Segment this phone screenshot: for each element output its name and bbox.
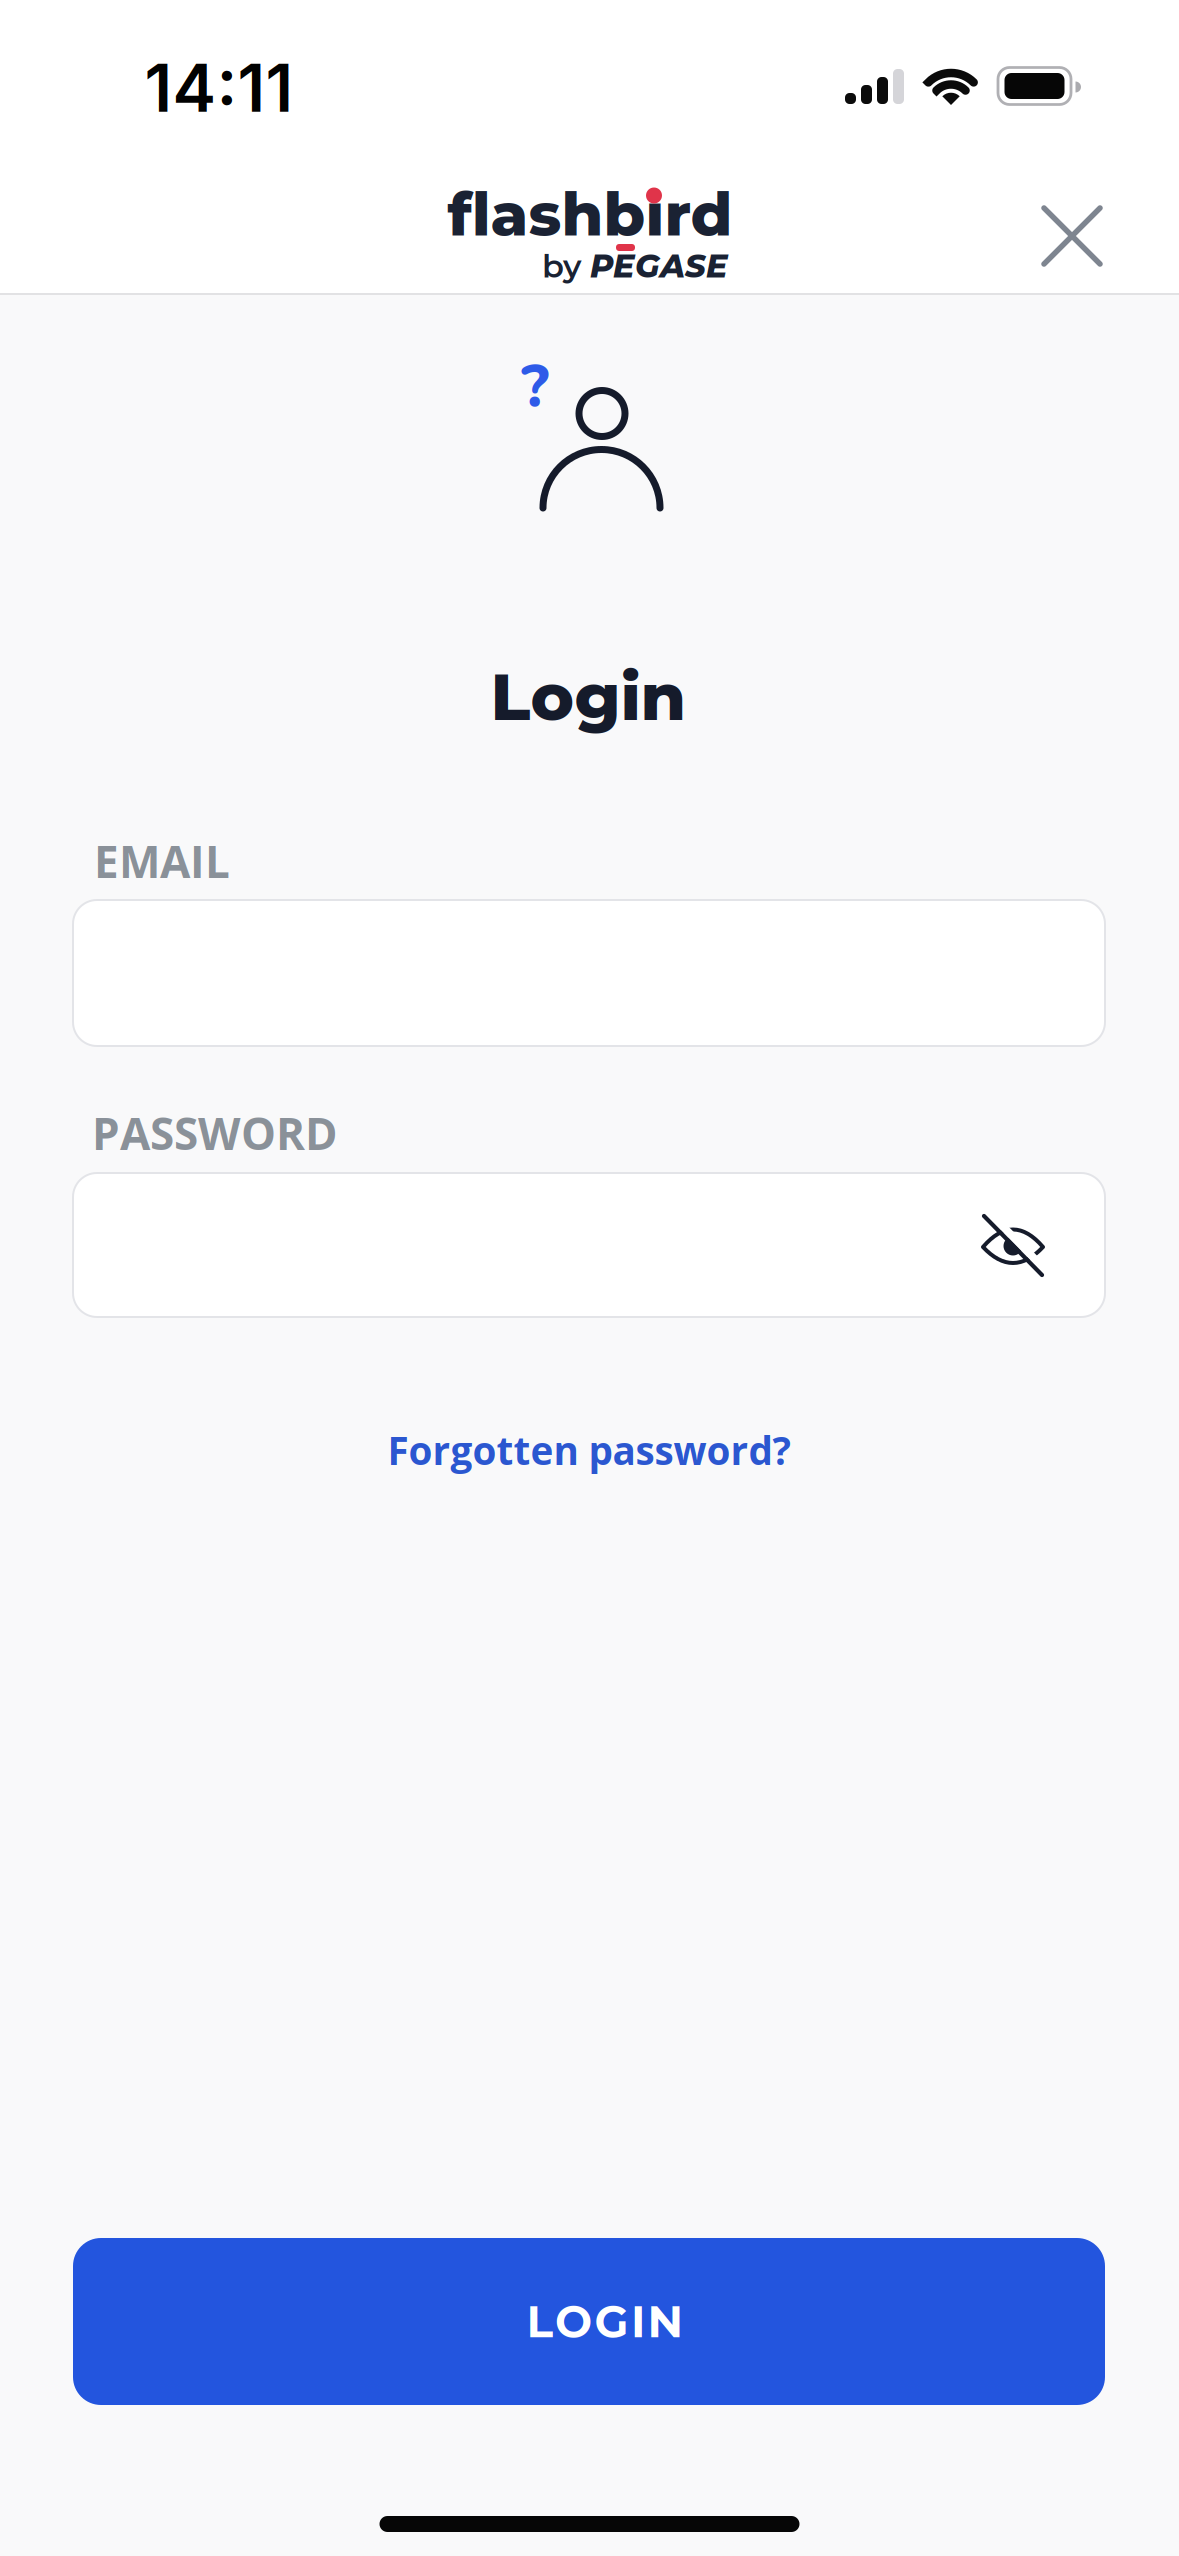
staticText: Login xyxy=(490,657,685,736)
staticText: PEGASE xyxy=(590,246,728,285)
button[interactable]: Help xyxy=(505,352,565,422)
staticText: EMAIL xyxy=(94,831,230,891)
staticText: Forgotten password? xyxy=(387,1424,790,1476)
staticText: LOGIN xyxy=(526,2295,683,2348)
staticText: 14:11 xyxy=(144,48,293,127)
button[interactable]: Forgotten password? xyxy=(387,1424,790,1476)
button[interactable]: Show password xyxy=(968,1201,1058,1291)
button[interactable]: LOGIN xyxy=(73,2238,1105,2405)
staticText: by xyxy=(542,246,581,285)
staticText: flashbırd xyxy=(447,177,732,250)
staticText: ? xyxy=(521,346,549,428)
staticText: PASSWORD xyxy=(92,1103,338,1163)
button[interactable]: Close xyxy=(1027,191,1117,281)
